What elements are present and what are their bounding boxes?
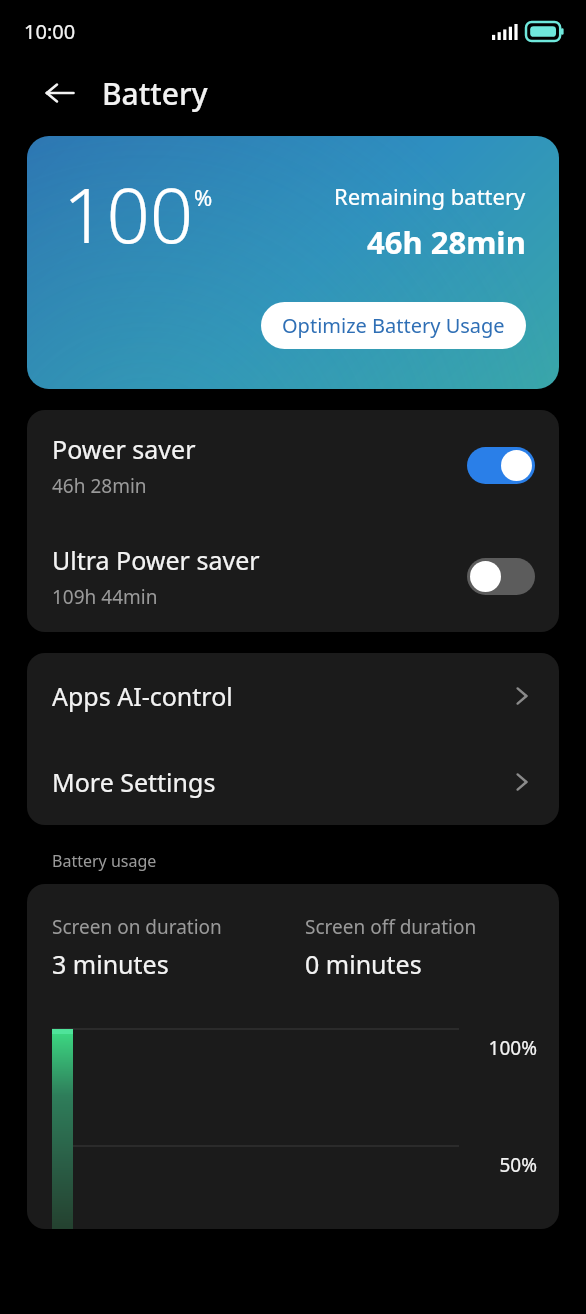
staticText: Battery	[102, 73, 208, 114]
button[interactable]: Ultra Power saver	[467, 558, 535, 595]
staticText: 0 minutes	[305, 947, 422, 981]
staticText: 100%	[488, 1035, 537, 1061]
button[interactable]: Optimize Battery Usage	[261, 302, 526, 349]
staticText: %	[194, 182, 213, 212]
staticText: Screen off duration	[305, 914, 477, 940]
staticText: Battery usage	[52, 850, 157, 872]
button[interactable]: Ultra Power saver	[27, 521, 559, 632]
staticText: Power saver	[52, 432, 196, 466]
staticText: More Settings	[52, 765, 512, 799]
button[interactable]: More Settings	[27, 739, 559, 825]
button[interactable]: Power saver	[27, 410, 559, 521]
staticText: Ultra Power saver	[52, 543, 260, 577]
button[interactable]: 100	[27, 136, 559, 389]
button[interactable]: Back	[34, 67, 86, 119]
staticText: Remaining battery	[334, 181, 526, 211]
staticText: 3 minutes	[52, 947, 169, 981]
staticText: 10:00	[24, 18, 76, 45]
staticText: 46h 28min	[367, 221, 526, 263]
button[interactable]: Apps AI-control	[27, 653, 559, 739]
staticText: 50%	[499, 1152, 537, 1178]
staticText: 100	[63, 162, 194, 266]
button[interactable]: Power saver	[467, 447, 535, 484]
staticText: 109h 44min	[52, 584, 158, 610]
staticText: Optimize Battery Usage	[282, 312, 505, 339]
staticText: Screen on duration	[52, 914, 222, 940]
staticText: Apps AI-control	[52, 679, 512, 713]
staticText: 46h 28min	[52, 473, 147, 499]
